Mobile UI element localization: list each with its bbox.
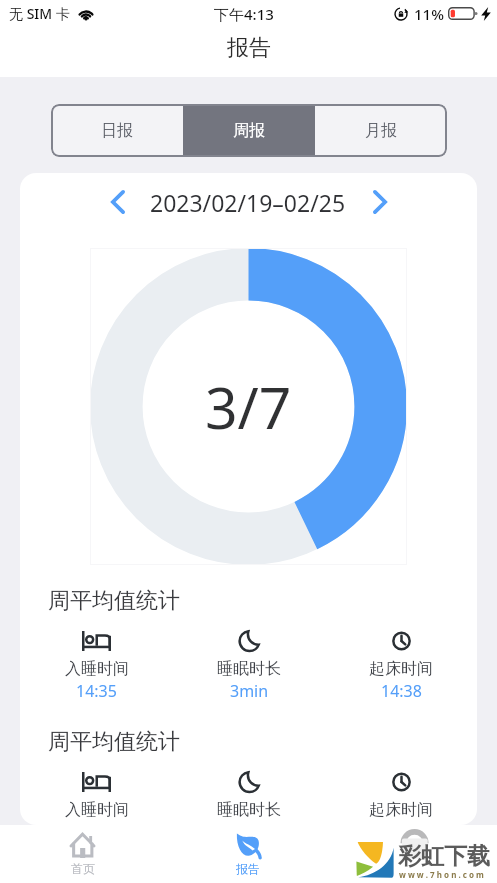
staticText: 首页 bbox=[71, 861, 95, 876]
button[interactable]: Next week bbox=[373, 182, 387, 222]
staticText: 下午4:13 bbox=[214, 4, 274, 24]
staticText: 睡眠时长 bbox=[217, 800, 281, 820]
button[interactable]: 入睡时间 bbox=[20, 772, 173, 825]
staticText: 睡眠时长 bbox=[217, 659, 281, 679]
staticText: 报告 bbox=[236, 861, 260, 876]
staticText: 3/7 bbox=[205, 368, 292, 446]
button[interactable]: 睡眠时长 bbox=[173, 772, 325, 825]
staticText: 起床时间 bbox=[369, 800, 433, 820]
button[interactable]: 起床时间 bbox=[325, 772, 477, 825]
staticText: w w w . 7 h o n . c o m bbox=[399, 869, 484, 880]
staticText: 周平均值统计 bbox=[48, 728, 180, 756]
button[interactable]: 睡眠时长 bbox=[173, 631, 325, 702]
button[interactable]: 首页 bbox=[0, 825, 165, 883]
staticText: 周平均值统计 bbox=[48, 587, 180, 615]
button[interactable]: 日报 bbox=[51, 104, 183, 157]
staticText: 报告 bbox=[227, 34, 271, 62]
staticText: 起床时间 bbox=[369, 659, 433, 679]
staticText: 周报 bbox=[233, 121, 265, 141]
button[interactable]: 月报 bbox=[315, 104, 447, 157]
staticText: 14:35 bbox=[76, 680, 117, 702]
staticText: 彩虹下载 bbox=[398, 842, 490, 871]
button[interactable]: 起床时间 bbox=[325, 631, 477, 702]
staticText: 月报 bbox=[365, 121, 397, 141]
button[interactable]: Previous week bbox=[111, 182, 125, 222]
staticText: 入睡时间 bbox=[65, 659, 129, 679]
button[interactable]: 报告 bbox=[165, 825, 331, 883]
staticText: 11% bbox=[414, 4, 444, 24]
staticText: 2023/02/19–02/25 bbox=[150, 187, 346, 218]
button[interactable]: 入睡时间 bbox=[20, 631, 173, 702]
staticText: 入睡时间 bbox=[65, 800, 129, 820]
button[interactable]: 周报 bbox=[183, 104, 315, 157]
staticText: 3min bbox=[230, 680, 269, 702]
staticText: 14:38 bbox=[381, 680, 422, 702]
staticText: 无 SIM 卡 bbox=[9, 4, 70, 23]
staticText: 日报 bbox=[101, 121, 133, 141]
